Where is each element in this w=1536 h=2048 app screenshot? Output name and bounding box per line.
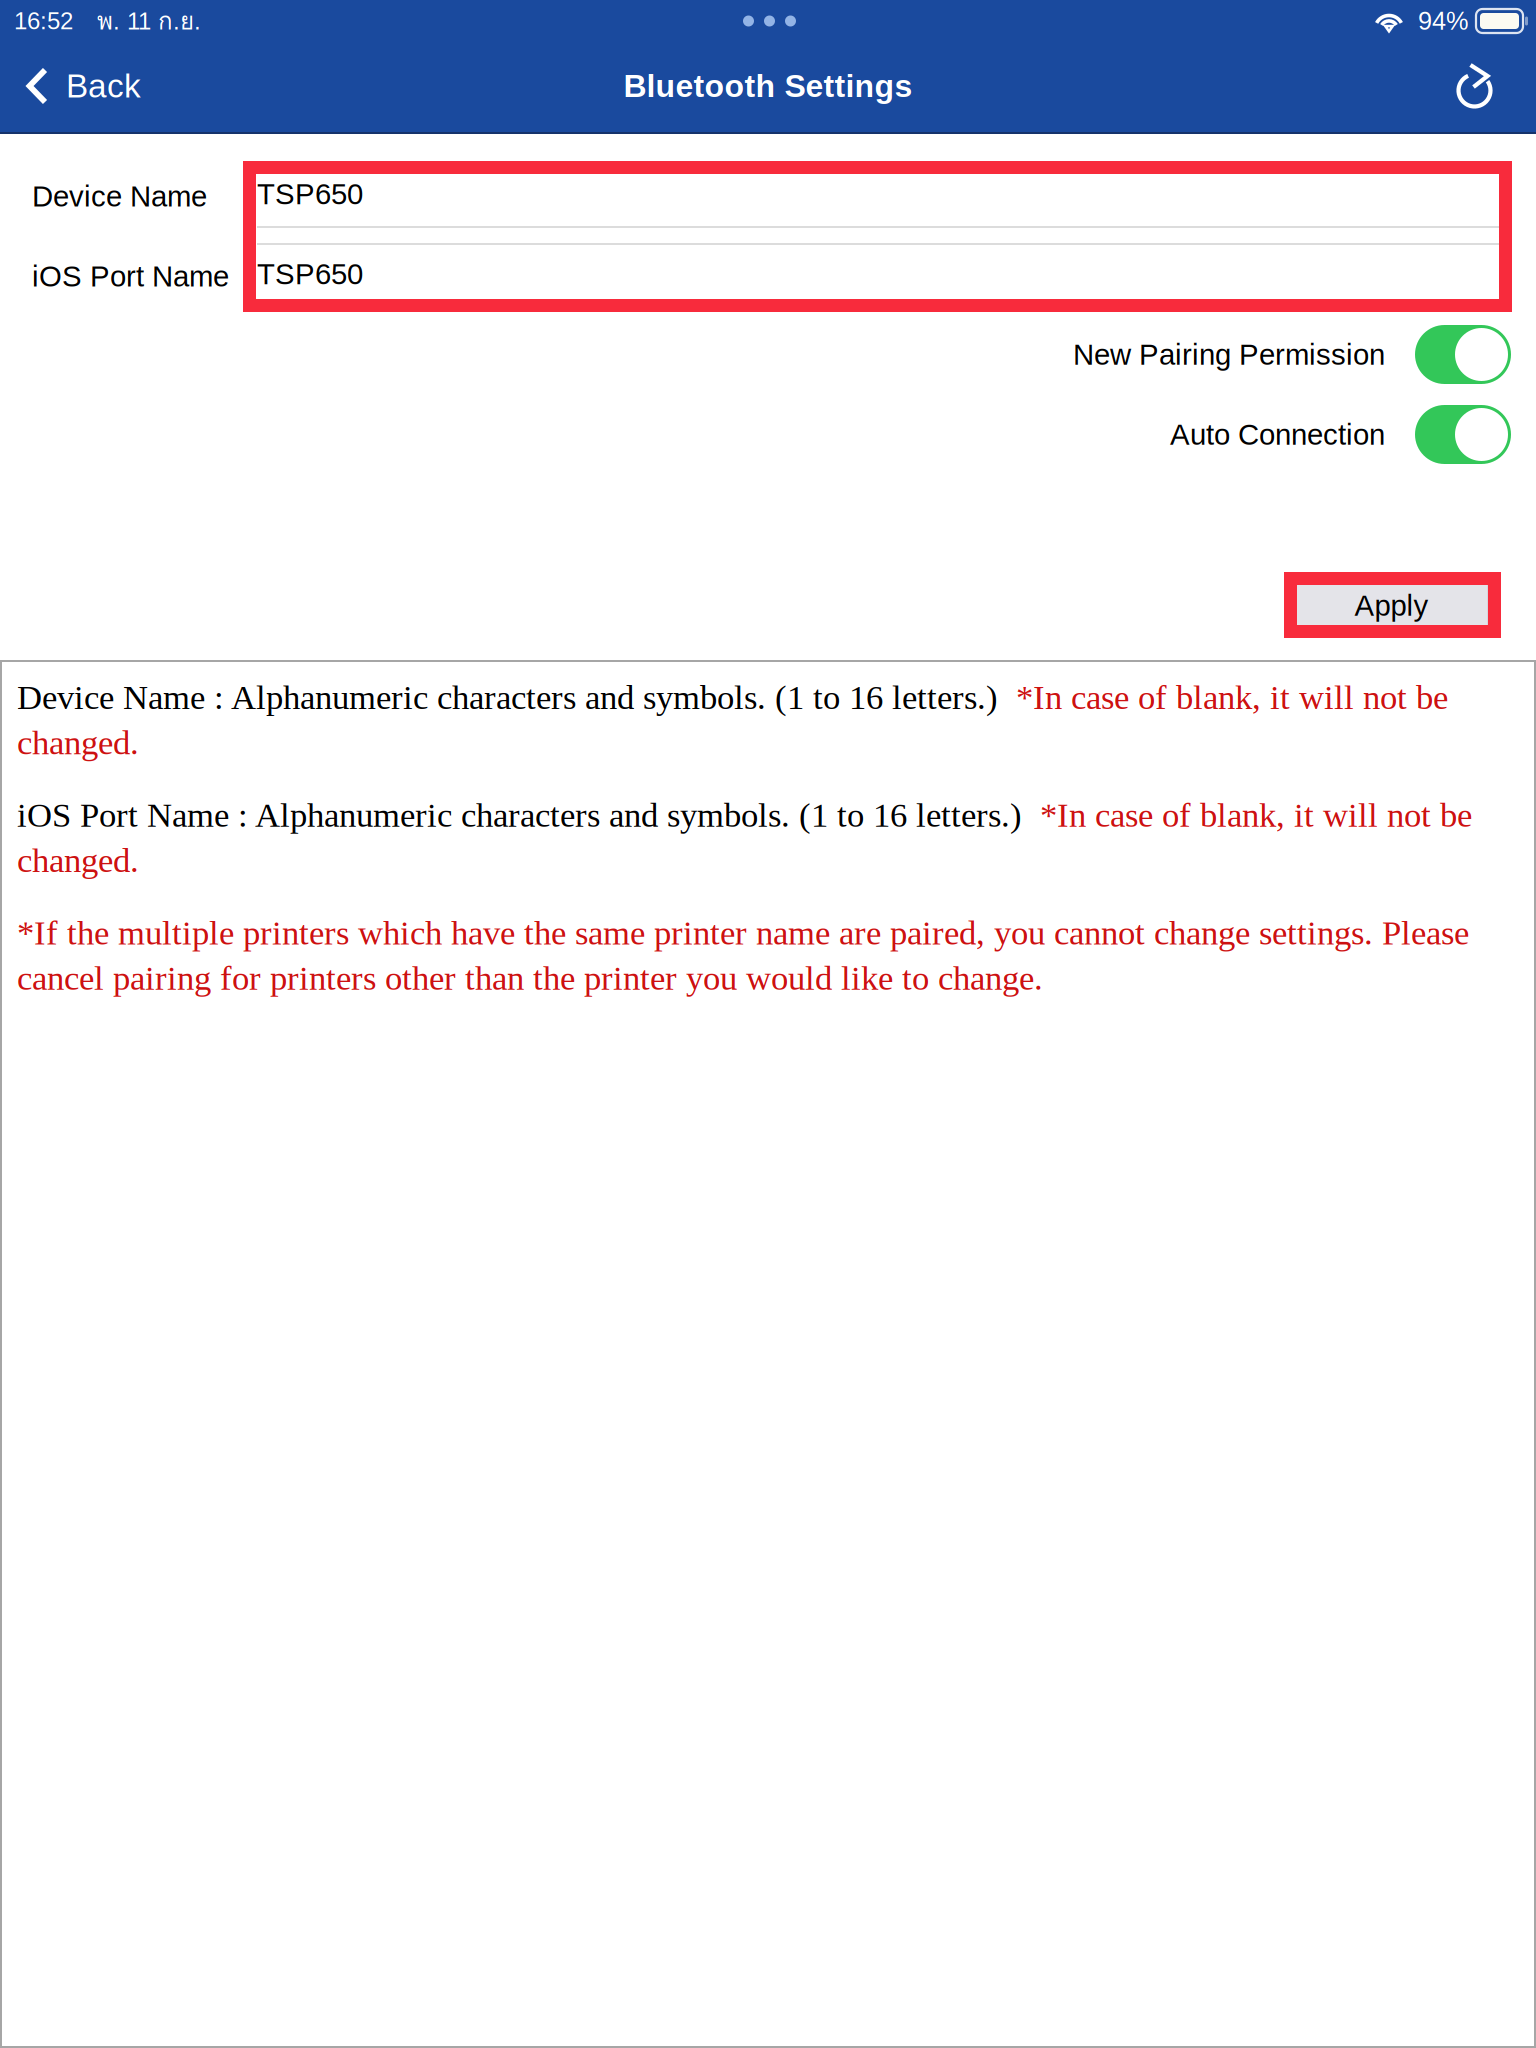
button[interactable]: TSP650 [257, 168, 1500, 220]
staticText: iOS Port Name [32, 260, 229, 293]
staticText: TSP650 [257, 178, 363, 210]
staticText: Auto Connection [1170, 418, 1385, 451]
button[interactable]: TSP650 [257, 248, 1500, 300]
staticText: Device Name : Alphanumeric characters an… [17, 678, 1448, 762]
staticText: Back [66, 67, 141, 105]
staticText: iOS Port Name : Alphanumeric characters … [17, 796, 1472, 880]
staticText: 16:52 [14, 8, 73, 34]
button[interactable]: New Pairing Permission [1385, 325, 1536, 384]
button[interactable]: Apply [1295, 584, 1488, 627]
staticText: Bluetooth Settings [623, 68, 912, 104]
staticText: พ. 11 ก.ย. [73, 2, 201, 40]
button[interactable]: Auto Connection [1385, 405, 1536, 464]
staticText: 94% [1404, 7, 1476, 35]
button[interactable]: Refresh [1430, 41, 1536, 131]
staticText: TSP650 [257, 258, 363, 290]
staticText: New Pairing Permission [1073, 338, 1385, 371]
staticText: *If the multiple printers which have the… [17, 914, 1469, 997]
staticText: Apply [1354, 589, 1428, 622]
staticText: Device Name [32, 180, 207, 213]
button[interactable]: Back [0, 41, 161, 131]
